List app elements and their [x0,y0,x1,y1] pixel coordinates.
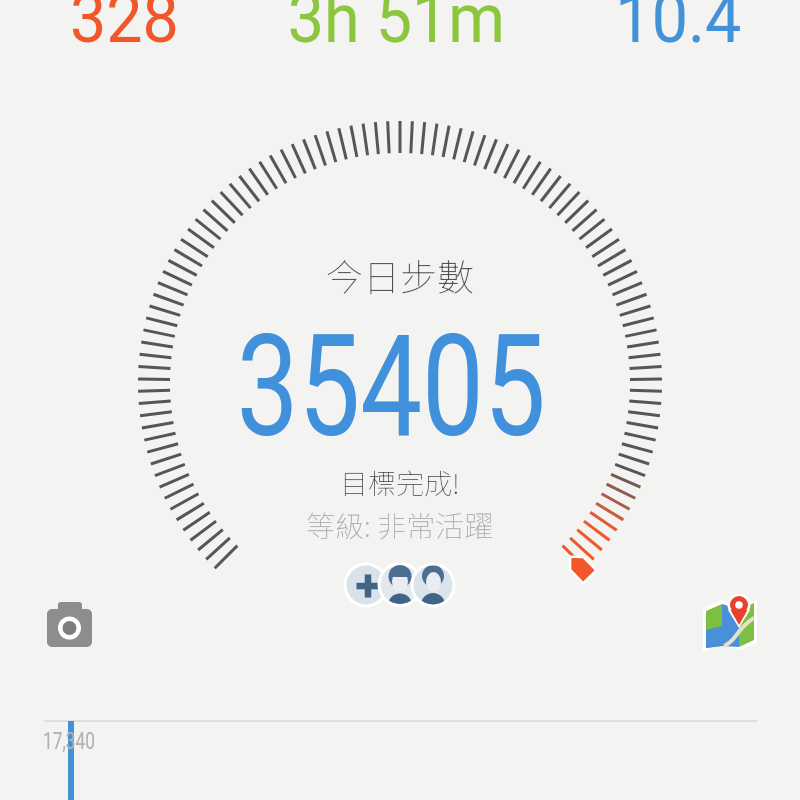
button[interactable] [342,561,456,609]
button[interactable] [40,600,96,656]
button[interactable]: 3h 51m [288,0,505,59]
button[interactable] [0,712,800,800]
staticText: 10.4 [615,0,742,59]
staticText: 目標完成! [340,462,460,503]
staticText: 今日步數 [326,248,474,302]
staticText: 35405 [237,304,546,469]
staticText: 等級: 非常活躍 [306,503,494,545]
staticText: 3h 51m [288,0,505,59]
button[interactable] [700,596,760,656]
button[interactable]: 35405 [237,304,546,469]
button[interactable]: 10.4 [615,0,742,59]
staticText: 328 [70,0,179,59]
button[interactable]: 328 [70,0,179,59]
staticText: 17,340 [43,727,96,755]
